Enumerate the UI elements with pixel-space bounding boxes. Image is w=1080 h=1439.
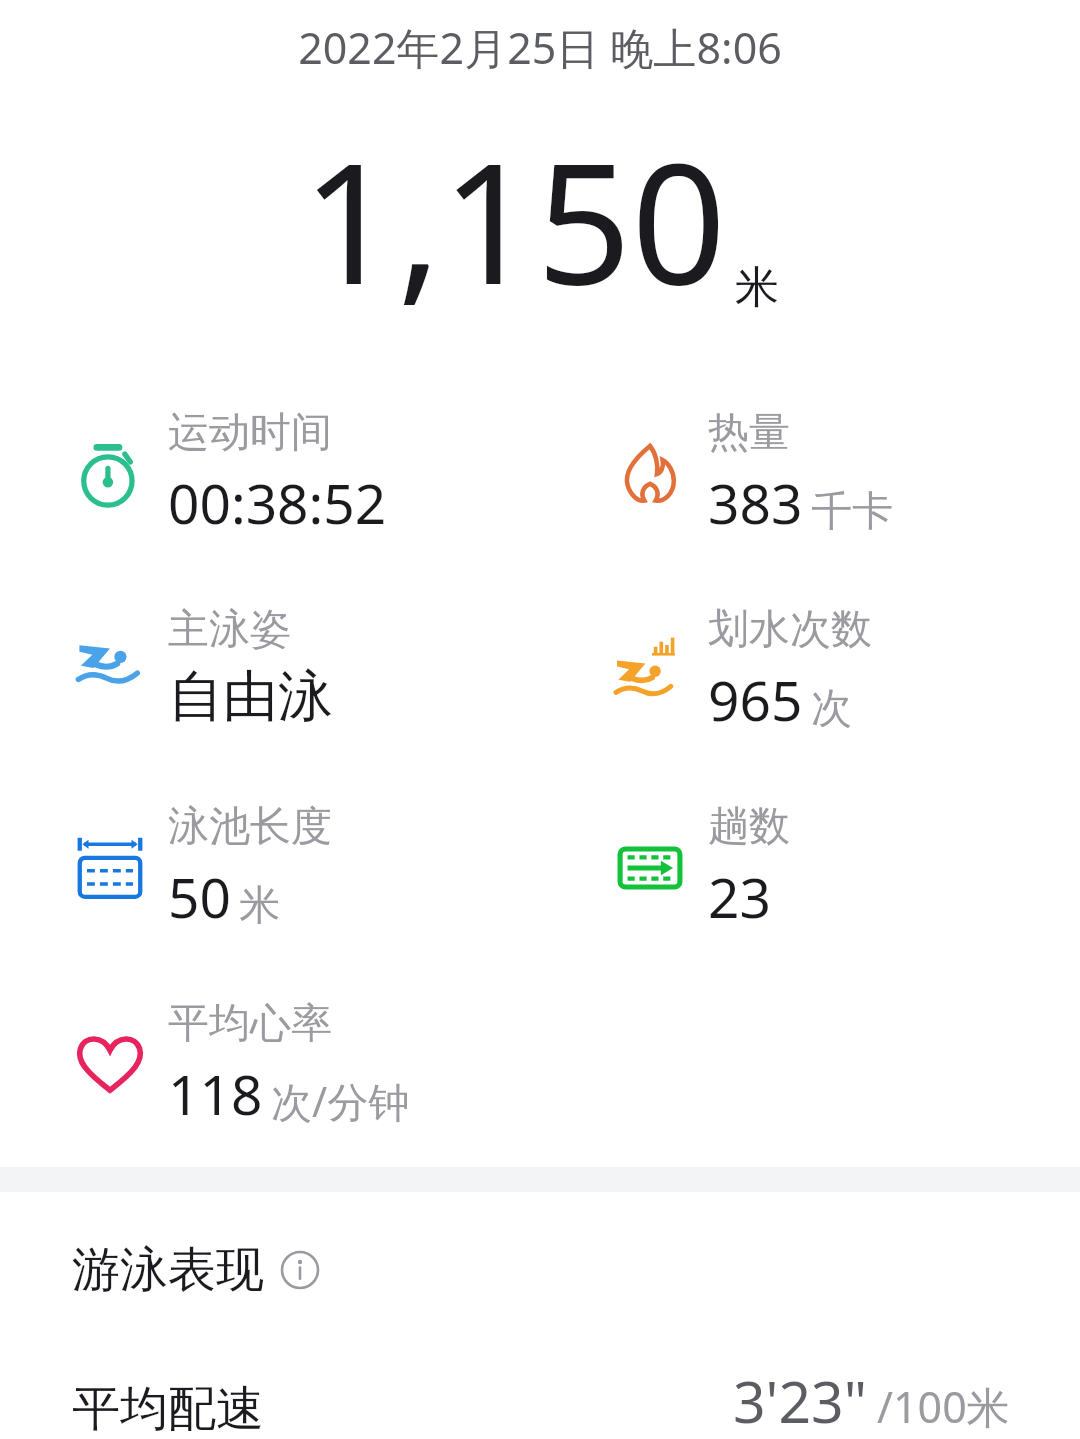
staticText: 运动时间 xyxy=(168,407,332,459)
button[interactable]: Pool length xyxy=(0,801,540,934)
button[interactable]: Duration xyxy=(0,407,540,540)
staticText: /100米 xyxy=(877,1377,1010,1436)
button[interactable]: 游泳表现 xyxy=(0,1192,1080,1310)
other: Swim style xyxy=(74,632,146,704)
other: Stroke count xyxy=(612,633,688,709)
staticText: 383 xyxy=(708,465,803,540)
staticText: 次 xyxy=(811,683,852,735)
staticText: 118 xyxy=(168,1056,263,1131)
staticText: 泳池长度 xyxy=(168,801,332,853)
button[interactable]: 平均配速 xyxy=(0,1362,1080,1439)
staticText: 趟数 xyxy=(708,801,790,853)
staticText: 2022年2月25日 晚上8:06 xyxy=(0,18,1080,77)
staticText: 965 xyxy=(708,662,803,737)
staticText: 米 xyxy=(239,880,280,932)
staticText: 自由泳 xyxy=(168,662,333,731)
staticText: 平均心率 xyxy=(168,998,332,1050)
staticText: 次/分钟 xyxy=(271,1073,410,1129)
other: Pool length xyxy=(74,832,146,904)
staticText: 平均配速 xyxy=(72,1379,264,1439)
other: Info xyxy=(280,1250,320,1290)
button[interactable]: Average heart rate xyxy=(0,998,540,1131)
staticText: 主泳姿 xyxy=(168,604,291,656)
button[interactable]: Calories xyxy=(540,407,1080,540)
other: Average heart rate xyxy=(73,1028,147,1102)
button[interactable]: Stroke count xyxy=(540,604,1080,737)
other: Calories xyxy=(615,439,685,509)
staticText: 23 xyxy=(708,859,771,934)
staticText: 游泳表现 xyxy=(72,1240,264,1300)
staticText: 热量 xyxy=(708,407,790,459)
staticText: 划水次数 xyxy=(708,604,872,656)
staticText: 千卡 xyxy=(811,486,893,538)
other: Duration xyxy=(75,439,145,509)
button[interactable]: Laps xyxy=(540,801,1080,934)
button[interactable]: Swim style xyxy=(0,604,540,731)
staticText: 50 xyxy=(168,859,231,934)
other: Laps xyxy=(616,834,684,902)
staticText: 00:38:52 xyxy=(168,465,387,540)
staticText: 3'23" xyxy=(733,1362,867,1439)
staticText: 1,150 xyxy=(302,107,727,333)
staticText: 米 xyxy=(735,260,779,315)
